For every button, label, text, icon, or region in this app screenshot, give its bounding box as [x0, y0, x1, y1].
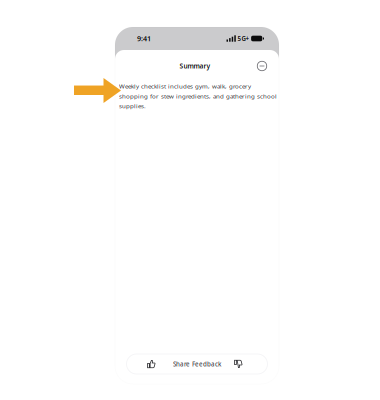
- staticText: 5G+: [237, 34, 249, 43]
- button[interactable]: Collapse summary: [256, 60, 268, 72]
- button[interactable]: Thumbs down: [213, 354, 263, 374]
- staticText: Summary: [179, 61, 210, 71]
- button[interactable]: Share Feedback: [162, 354, 232, 374]
- staticText: 9:41: [137, 34, 151, 43]
- button[interactable]: Thumbs up: [126, 354, 176, 374]
- staticText: Share Feedback: [173, 360, 221, 368]
- staticText: Weekly checklist includes gym, walk, gro…: [119, 82, 277, 110]
